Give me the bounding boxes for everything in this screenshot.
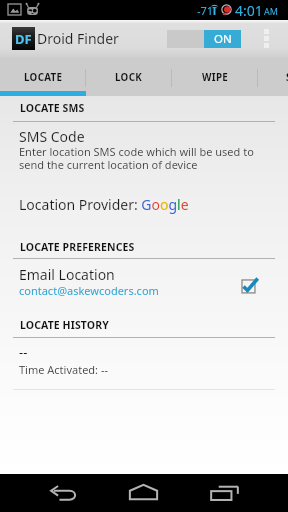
staticText: Droid Finder — [37, 29, 119, 48]
button[interactable]: Email Location checkbox — [241, 276, 259, 294]
staticText: LOCATE SMS — [20, 101, 85, 115]
staticText: WIPE — [202, 71, 229, 84]
staticText: -71 — [197, 3, 214, 18]
button[interactable]: More options — [255, 20, 277, 57]
staticText: LOCATE — [24, 71, 63, 84]
button[interactable]: Home — [120, 474, 168, 512]
button[interactable]: LOCATE — [0, 57, 86, 96]
staticText: LOCK — [115, 71, 143, 84]
button[interactable]: Recent apps — [200, 474, 248, 512]
staticText: Enter location SMS code which will be us… — [19, 144, 254, 159]
staticText: 4:01 — [235, 1, 263, 20]
staticText: DF — [15, 30, 32, 48]
staticText: LOCATE HISTORY — [20, 318, 109, 332]
button[interactable]: WIPE — [172, 57, 258, 96]
staticText: Email Location — [19, 265, 115, 284]
staticText: Location Provider: Google — [19, 195, 189, 214]
staticText: AM — [264, 5, 278, 17]
staticText: send the current location of device — [19, 157, 198, 172]
button[interactable]: Enable Droid Finder — [167, 30, 241, 48]
button[interactable]: Email Location — [0, 264, 288, 302]
staticText: Time Activated: -- — [19, 362, 109, 377]
staticText: ON — [214, 31, 232, 47]
button[interactable]: LOCK — [86, 57, 172, 96]
staticText: contact@askewcoders.com — [19, 283, 159, 298]
staticText: -- — [19, 343, 28, 361]
button[interactable]: Back — [40, 474, 88, 512]
staticText: SIREN — [286, 71, 288, 84]
staticText: LOCATE PREFERENCES — [20, 240, 135, 254]
button[interactable]: SIREN — [258, 57, 288, 96]
staticText: SMS Code — [19, 127, 85, 146]
